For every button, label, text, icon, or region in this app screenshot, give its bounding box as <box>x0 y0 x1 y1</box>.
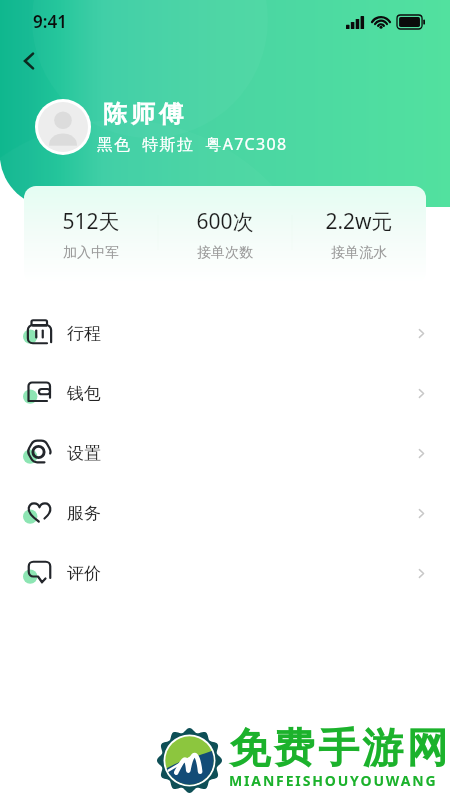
staticText: 加入中军 <box>63 244 119 262</box>
staticText: 接单流水 <box>331 244 387 262</box>
staticText: 评价 <box>67 563 101 584</box>
staticText: 行程 <box>67 323 101 344</box>
staticText: 600次 <box>196 207 254 236</box>
staticText: 钱包 <box>67 383 101 404</box>
button[interactable]: 钱包 <box>0 363 450 423</box>
button[interactable]: 设置 <box>0 423 450 483</box>
staticText: 512天 <box>62 207 120 236</box>
staticText: 服务 <box>67 503 101 524</box>
staticText: 接单次数 <box>197 244 253 262</box>
button[interactable]: 行程 <box>0 303 450 363</box>
staticText: 2.2w元 <box>325 207 393 236</box>
staticText: MIANFEISHOUYOUWANG <box>229 771 438 790</box>
staticText: 陈师傅 <box>101 99 185 129</box>
button[interactable]: 服务 <box>0 483 450 543</box>
staticText: 黑色 特斯拉 粤A7C308 <box>97 133 288 155</box>
staticText: 免费手游网 <box>228 723 449 775</box>
staticText: 设置 <box>67 443 101 464</box>
button[interactable]: Back <box>6 38 52 84</box>
button[interactable]: 评价 <box>0 543 450 603</box>
staticText: 9:41 <box>33 10 67 33</box>
